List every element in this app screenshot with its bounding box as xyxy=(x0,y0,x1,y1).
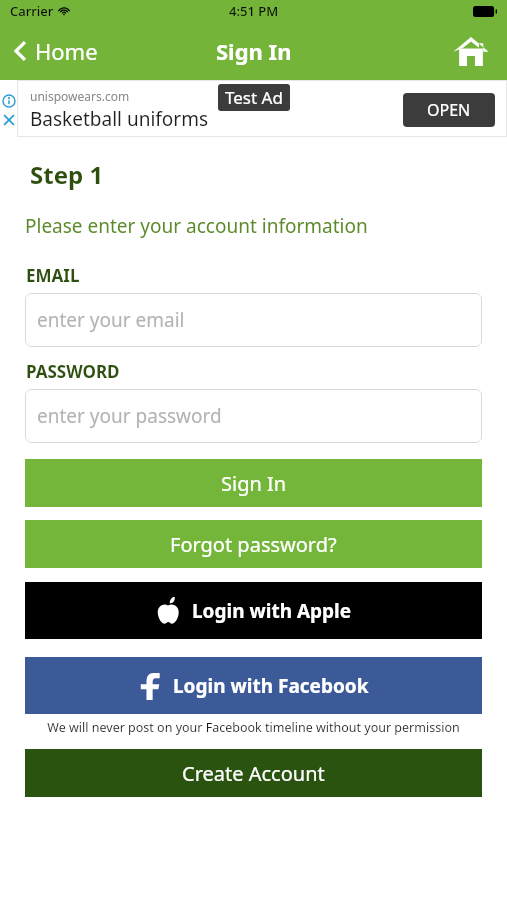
staticText: Forgot password? xyxy=(170,531,337,558)
button[interactable]: OPEN xyxy=(403,93,495,127)
button[interactable]: Create Account xyxy=(25,749,482,797)
button[interactable]: Home xyxy=(449,29,493,73)
staticText: Please enter your account information xyxy=(25,213,368,239)
staticText: Login with Apple xyxy=(192,598,352,624)
staticText: We will never post on your Facebook time… xyxy=(40,719,467,736)
staticText: enter your email xyxy=(37,307,185,333)
staticText: enter your password xyxy=(37,403,222,429)
button[interactable]: Home xyxy=(12,36,98,66)
staticText: Create Account xyxy=(182,760,325,787)
staticText: Sign In xyxy=(216,36,292,66)
button[interactable]: Login with Apple xyxy=(25,582,482,639)
button[interactable]: Login with Facebook xyxy=(25,657,482,714)
staticText: Basketball uniforms xyxy=(30,106,209,132)
button[interactable]: Forgot password? xyxy=(25,520,482,568)
staticText: EMAIL xyxy=(26,264,80,287)
staticText: Home xyxy=(35,36,98,66)
staticText: Login with Facebook xyxy=(173,673,369,699)
button[interactable]: Sign In xyxy=(25,459,482,507)
staticText: PASSWORD xyxy=(26,360,120,383)
staticText: unispowears.com xyxy=(30,88,130,104)
staticText: Sign In xyxy=(221,470,287,497)
button[interactable]: enter your password xyxy=(25,389,482,443)
staticText: Step 1 xyxy=(30,158,104,191)
button[interactable]: Close ad xyxy=(2,113,16,127)
staticText: Test Ad xyxy=(225,86,283,109)
staticText: Carrier xyxy=(10,2,54,20)
button[interactable]: enter your email xyxy=(25,293,482,347)
staticText: 4:51 PM xyxy=(229,2,279,20)
button[interactable]: Ad info xyxy=(2,94,16,108)
staticText: OPEN xyxy=(427,99,471,121)
